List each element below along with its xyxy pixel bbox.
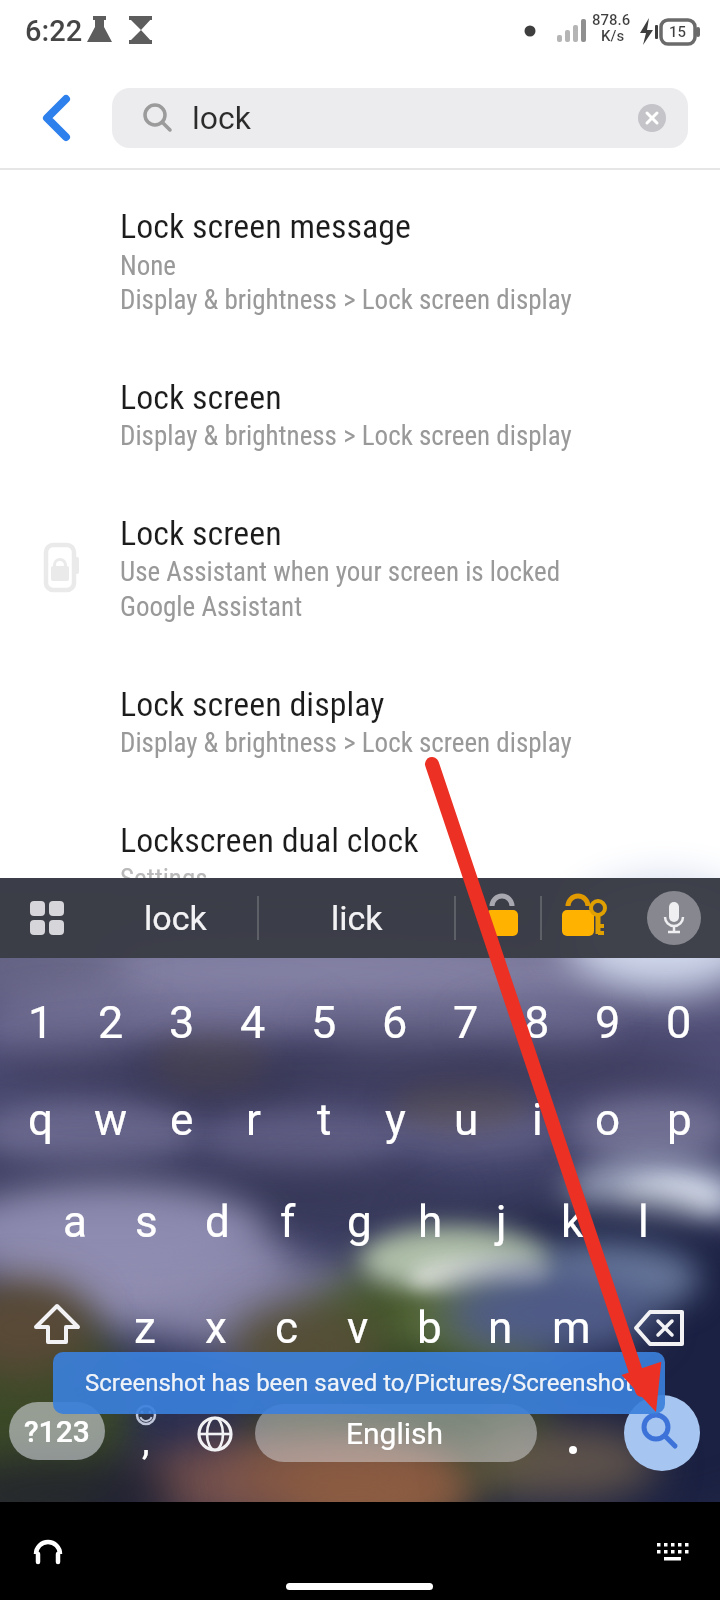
staticText: 4 [240, 996, 266, 1049]
staticText: 0 [666, 996, 692, 1049]
staticText: c [275, 1302, 299, 1354]
staticText: Lock screen display [120, 684, 385, 724]
staticText: g [347, 1196, 372, 1248]
staticText: Lock screen message [120, 206, 412, 246]
staticText: , [142, 1419, 150, 1464]
staticText: Lock screen [120, 377, 282, 417]
staticText: 8 [524, 996, 550, 1049]
staticText: b [417, 1302, 442, 1354]
staticText: 6 [382, 996, 408, 1049]
staticText: p [667, 1094, 692, 1146]
staticText: 9 [595, 996, 621, 1049]
staticText: k [561, 1196, 584, 1248]
staticText: 3 [169, 996, 195, 1049]
staticText: d [205, 1196, 230, 1248]
staticText: Use Assistant when your screen is locked [120, 556, 561, 588]
staticText: None [120, 250, 177, 282]
staticText: w [94, 1094, 128, 1146]
staticText: Display & brightness > Lock screen displ… [120, 284, 572, 316]
staticText: n [488, 1302, 513, 1354]
staticText: 1 [28, 996, 54, 1049]
staticText: o [595, 1094, 621, 1146]
staticText: ?123 [24, 1414, 90, 1449]
staticText: f [280, 1196, 296, 1248]
staticText: 15 [669, 23, 687, 41]
staticText: 5 [311, 996, 337, 1049]
staticText: i [532, 1094, 543, 1146]
staticText: Display & brightness > Lock screen displ… [120, 727, 572, 759]
staticText: l [638, 1196, 649, 1248]
staticText: 878.6 [592, 11, 631, 29]
staticText: 7 [453, 996, 479, 1049]
staticText: English [346, 1416, 444, 1451]
staticText: z [134, 1302, 156, 1354]
staticText: e [170, 1094, 194, 1146]
staticText: r [246, 1094, 261, 1146]
staticText: t [317, 1094, 332, 1146]
staticText: y [385, 1094, 406, 1146]
staticText: m [552, 1302, 591, 1354]
staticText: s [135, 1196, 158, 1248]
staticText: Lockscreen dual clock [120, 820, 419, 860]
staticText: j [496, 1196, 507, 1248]
staticText: a [63, 1196, 87, 1248]
staticText: q [28, 1094, 54, 1146]
staticText: lock [192, 99, 251, 137]
staticText: h [418, 1196, 443, 1248]
staticText: Screenshot has been saved to/Pictures/Sc… [85, 1369, 633, 1397]
staticText: Google Assistant [120, 591, 303, 623]
staticText: 6:22 [25, 14, 83, 48]
staticText: lock [144, 898, 207, 938]
staticText: Settings [120, 863, 208, 895]
staticText: Lock screen [120, 513, 282, 553]
staticText: u [454, 1094, 479, 1146]
staticText: Display & brightness > Lock screen displ… [120, 420, 572, 452]
staticText: x [205, 1302, 227, 1354]
staticText: 2 [98, 996, 124, 1049]
staticText: lick [331, 898, 383, 938]
staticText: v [347, 1302, 369, 1354]
staticText: K/s [601, 27, 625, 45]
